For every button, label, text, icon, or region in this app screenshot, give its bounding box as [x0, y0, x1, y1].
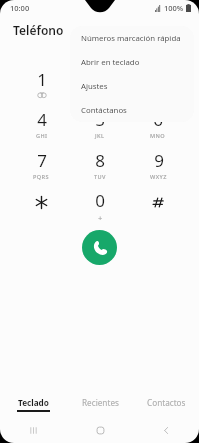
staticText: 10:00	[10, 3, 30, 13]
staticText: Abrir en teclado	[81, 57, 140, 68]
staticText: 6	[153, 108, 163, 131]
button[interactable]: 7	[12, 144, 71, 185]
button[interactable]: Back	[133, 417, 199, 443]
button[interactable]: 2	[71, 62, 129, 103]
staticText: 0	[95, 189, 105, 212]
button[interactable]: Contáctanos	[70, 98, 194, 122]
staticText: 2	[96, 67, 106, 90]
staticText: 1	[37, 68, 47, 91]
staticText: Contáctanos	[81, 105, 127, 116]
button[interactable]: Ajustes	[70, 74, 194, 98]
staticText: Recientes	[82, 397, 119, 408]
button[interactable]	[12, 185, 71, 226]
staticText: WXYZ	[150, 173, 167, 181]
button[interactable]: Números marcación rápida	[70, 26, 194, 50]
button[interactable]: 5	[71, 103, 129, 144]
staticText: Teclado	[18, 397, 49, 408]
button[interactable]: 8	[71, 144, 129, 185]
staticText: Ajustes	[81, 81, 108, 92]
staticText: Contactos	[147, 397, 186, 408]
button[interactable]: 3	[129, 62, 187, 103]
button[interactable]: Home	[67, 417, 133, 443]
staticText: Teléfono	[13, 22, 64, 38]
button[interactable]: Teclado	[0, 391, 67, 417]
button[interactable]	[129, 185, 187, 226]
button[interactable]: Abrir en teclado	[70, 50, 194, 74]
staticText: 100%	[164, 3, 184, 13]
staticText: +	[98, 213, 103, 223]
staticText: 7	[37, 149, 47, 172]
button[interactable]: 6	[129, 103, 187, 144]
button[interactable]: 0	[71, 185, 129, 226]
button[interactable]: Recientes	[67, 391, 133, 417]
button[interactable]: 1	[12, 62, 71, 103]
staticText: JKL	[95, 132, 105, 140]
staticText: 8	[95, 149, 105, 172]
button[interactable]: 9	[129, 144, 187, 185]
staticText: Números marcación rápida	[81, 33, 181, 44]
button[interactable]: 4	[12, 103, 71, 144]
staticText: 5	[95, 108, 105, 131]
staticText: TUV	[94, 173, 106, 181]
staticText: GHI	[36, 132, 48, 140]
staticText: MNO	[150, 132, 166, 140]
button[interactable]: Call	[82, 230, 117, 265]
staticText: 4	[37, 108, 47, 131]
staticText: PQRS	[33, 173, 50, 181]
button[interactable]: Recent apps	[0, 417, 67, 443]
staticText: 9	[154, 149, 164, 172]
button[interactable]: Contactos	[133, 391, 199, 417]
